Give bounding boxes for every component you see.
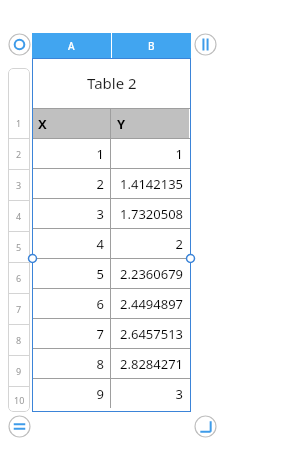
staticText: 10	[14, 394, 25, 406]
button[interactable]: 2.2360679	[117, 259, 183, 288]
staticText: 3	[96, 205, 104, 223]
staticText: 2	[16, 148, 22, 160]
staticText: 7	[96, 325, 104, 343]
button[interactable]: 6	[8, 263, 30, 293]
staticText: 6	[16, 272, 22, 284]
staticText: 1.4142135	[120, 175, 183, 193]
button[interactable]: 3	[117, 379, 183, 408]
staticText: X	[38, 115, 47, 133]
button[interactable]: 8	[8, 325, 30, 355]
button[interactable]: 4	[38, 229, 104, 258]
staticText: 2.6457513	[120, 325, 183, 343]
staticText: 8	[16, 334, 22, 346]
button[interactable]: 9	[8, 356, 30, 386]
button[interactable]: 10	[8, 387, 30, 412]
staticText: 3	[175, 385, 183, 403]
staticText: 3	[16, 179, 22, 191]
button[interactable]: Resize right edge	[186, 254, 195, 263]
staticText: 7	[16, 303, 22, 315]
staticText: 2	[175, 235, 183, 253]
button[interactable]: Rows	[8, 415, 31, 438]
staticText: B	[148, 39, 155, 53]
staticText: 6	[96, 295, 104, 313]
button[interactable]: 2	[8, 139, 30, 169]
staticText: 2	[96, 175, 104, 193]
button[interactable]: 1	[38, 139, 104, 168]
button[interactable]: 5	[38, 259, 104, 288]
staticText: 1.7320508	[120, 205, 183, 223]
button[interactable]: 8	[38, 349, 104, 378]
button[interactable]: 1.7320508	[117, 199, 183, 228]
staticText: 2.8284271	[120, 355, 183, 373]
staticText: 2.2360679	[120, 265, 183, 283]
button[interactable]: 5	[8, 232, 30, 262]
button[interactable]: 1	[8, 108, 30, 138]
staticText: 4	[96, 235, 104, 253]
staticText: 9	[96, 385, 104, 403]
staticText: 2.4494897	[120, 295, 183, 313]
button[interactable]: Y	[117, 109, 183, 138]
staticText: 1	[96, 145, 104, 163]
staticText: A	[68, 39, 75, 53]
button[interactable]: 6	[38, 289, 104, 318]
button[interactable]: 2.6457513	[117, 319, 183, 348]
button[interactable]: 3	[8, 170, 30, 200]
staticText: 5	[16, 241, 22, 253]
button[interactable]: Columns	[194, 33, 217, 56]
button[interactable]: Table 2	[32, 58, 191, 108]
button[interactable]: 3	[38, 199, 104, 228]
button[interactable]: B	[112, 33, 191, 58]
staticText: 4	[16, 210, 22, 222]
button[interactable]: 7	[8, 294, 30, 324]
staticText: Y	[117, 115, 126, 133]
staticText: 1	[16, 117, 22, 129]
button[interactable]: 9	[38, 379, 104, 408]
staticText: 1	[175, 145, 183, 163]
button[interactable]: 2.8284271	[117, 349, 183, 378]
button[interactable]: X	[38, 109, 104, 138]
button[interactable]: 2.4494897	[117, 289, 183, 318]
button[interactable]: 1.4142135	[117, 169, 183, 198]
staticText: Table 2	[87, 73, 137, 93]
button[interactable]: Select all	[8, 33, 31, 56]
button[interactable]: Resize left edge	[28, 254, 37, 263]
button[interactable]: 7	[38, 319, 104, 348]
button[interactable]: A	[32, 33, 111, 58]
button[interactable]: Resize table	[194, 415, 217, 438]
button[interactable]: 1	[117, 139, 183, 168]
staticText: 9	[16, 365, 22, 377]
button[interactable]: 4	[8, 201, 30, 231]
staticText: 5	[96, 265, 104, 283]
button[interactable]: 2	[117, 229, 183, 258]
button[interactable]: 2	[38, 169, 104, 198]
staticText: 8	[96, 355, 104, 373]
